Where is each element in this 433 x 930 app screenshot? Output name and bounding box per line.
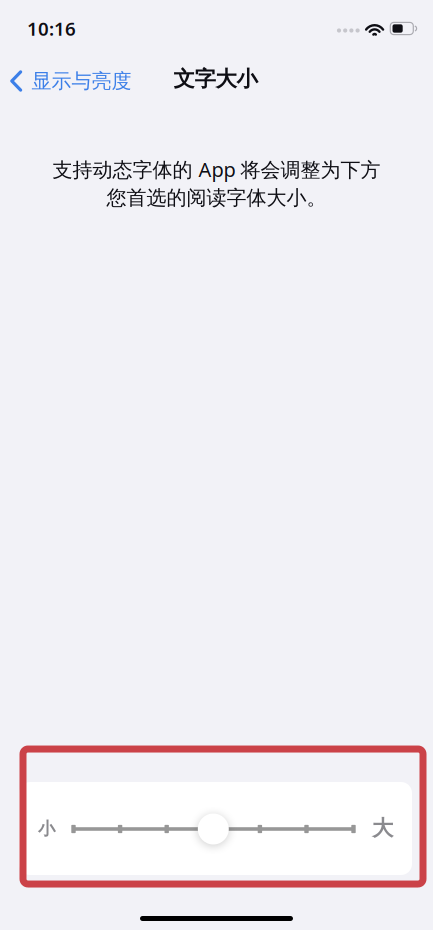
- staticText: 10:16: [27, 16, 76, 41]
- staticText: 大: [372, 815, 393, 841]
- button[interactable]: 显示与亮度: [0, 59, 141, 103]
- staticText: 显示与亮度: [31, 69, 131, 93]
- staticText: 小: [38, 818, 55, 839]
- button[interactable]: 文字大小: [72, 813, 354, 844]
- staticText: 支持动态字体的 App 将会调整为下方: [52, 156, 380, 183]
- staticText: 您首选的阅读字体大小。: [106, 186, 326, 210]
- staticText: 文字大小: [173, 66, 257, 92]
